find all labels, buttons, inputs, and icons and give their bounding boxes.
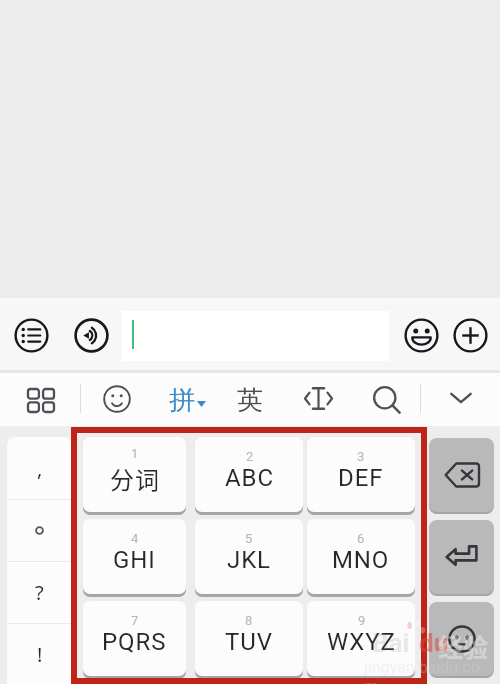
staticText: ! <box>37 641 43 668</box>
button[interactable]: Emoji <box>399 313 444 358</box>
button[interactable]: 3 <box>307 437 415 512</box>
button[interactable]: 拼 <box>169 382 215 418</box>
staticText: 5 <box>245 531 253 546</box>
button[interactable]: Face emoji <box>429 602 494 676</box>
staticText: 4 <box>131 531 139 546</box>
button[interactable]: 6 <box>307 519 415 594</box>
button[interactable]: 2 <box>195 437 303 512</box>
button[interactable]: 9 <box>307 601 415 676</box>
button[interactable]: Hide keyboard <box>445 387 477 409</box>
staticText: 3 <box>357 449 365 464</box>
button[interactable]: 4 <box>83 519 186 594</box>
staticText: 2 <box>246 449 254 464</box>
button[interactable] <box>7 499 72 561</box>
button[interactable]: Speech list <box>9 313 54 358</box>
button[interactable]: 8 <box>195 601 303 676</box>
staticText: 分词 <box>110 461 160 496</box>
staticText: DEF <box>338 464 384 492</box>
button[interactable]: Keyboard layouts <box>23 384 59 417</box>
staticText: Bai <box>372 628 410 658</box>
staticText: 8 <box>245 613 253 628</box>
staticText: 经验 <box>438 628 489 664</box>
button[interactable]: Add <box>448 313 493 358</box>
staticText: ABC <box>225 464 274 492</box>
staticText: 9 <box>358 613 366 628</box>
button[interactable]: , <box>7 437 72 499</box>
button[interactable] <box>122 311 389 361</box>
button[interactable]: 5 <box>195 519 303 594</box>
staticText: PQRS <box>102 628 167 656</box>
button[interactable]: Voice input <box>69 313 114 358</box>
button[interactable]: Emoticons <box>98 380 136 418</box>
staticText: MNO <box>332 546 390 574</box>
staticText: 7 <box>131 613 139 628</box>
staticText: 英 <box>237 384 263 417</box>
staticText: TUV <box>225 628 273 656</box>
staticText: 6 <box>357 531 365 546</box>
staticText: 拼 <box>169 384 195 417</box>
button[interactable]: 英 <box>233 382 267 418</box>
staticText: GHI <box>113 546 156 574</box>
button[interactable]: ! <box>7 623 72 684</box>
staticText: , <box>37 455 43 482</box>
button[interactable]: Search <box>368 381 406 419</box>
button[interactable]: ? <box>7 561 72 623</box>
button[interactable]: 1 <box>83 437 186 512</box>
button[interactable]: Cursor control <box>300 380 337 417</box>
button[interactable]: Backspace <box>429 438 494 512</box>
staticText: 1 <box>131 446 139 461</box>
staticText: ? <box>35 579 44 606</box>
staticText: JKL <box>227 546 271 574</box>
staticText: WXYZ <box>327 628 396 656</box>
button[interactable]: 7 <box>83 601 186 676</box>
button[interactable]: Enter <box>429 520 494 594</box>
staticText: du <box>419 628 449 658</box>
staticText: jingyan.baidu.com <box>364 658 492 684</box>
